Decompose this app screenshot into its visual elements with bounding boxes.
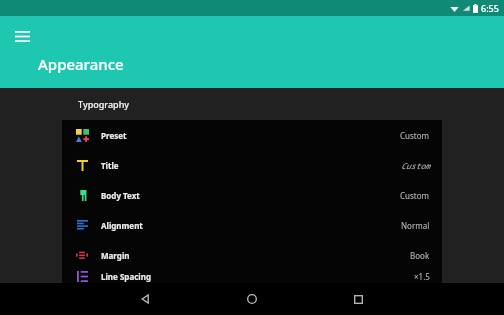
staticText: Appearance bbox=[38, 54, 124, 74]
button[interactable]: Line Spacing bbox=[62, 270, 442, 283]
staticText: Normal bbox=[401, 220, 430, 231]
button[interactable]: Preset bbox=[62, 120, 442, 150]
staticText: Margin bbox=[101, 250, 130, 261]
staticText: Body Text bbox=[101, 190, 140, 201]
button[interactable]: Alignment bbox=[62, 210, 442, 240]
staticText: Line Spacing bbox=[101, 271, 151, 282]
staticText: Title bbox=[101, 160, 119, 171]
button[interactable]: Title bbox=[62, 150, 442, 180]
button[interactable]: Home bbox=[236, 283, 268, 315]
button[interactable]: Back bbox=[130, 283, 162, 315]
staticText: Book bbox=[410, 250, 430, 261]
staticText: 6:55 bbox=[481, 2, 499, 14]
staticText: Preset bbox=[101, 130, 127, 141]
button[interactable]: Margin bbox=[62, 240, 442, 270]
button[interactable]: Open navigation menu bbox=[8, 22, 36, 50]
staticText: Alignment bbox=[101, 220, 143, 231]
staticText: ×1.5 bbox=[414, 271, 430, 282]
staticText: Custom bbox=[400, 130, 430, 141]
staticText: Custom bbox=[400, 190, 430, 201]
button[interactable]: Body Text bbox=[62, 180, 442, 210]
staticText: Custom bbox=[401, 160, 430, 171]
staticText: Typography bbox=[78, 98, 130, 110]
button[interactable]: Recent apps bbox=[342, 283, 374, 315]
